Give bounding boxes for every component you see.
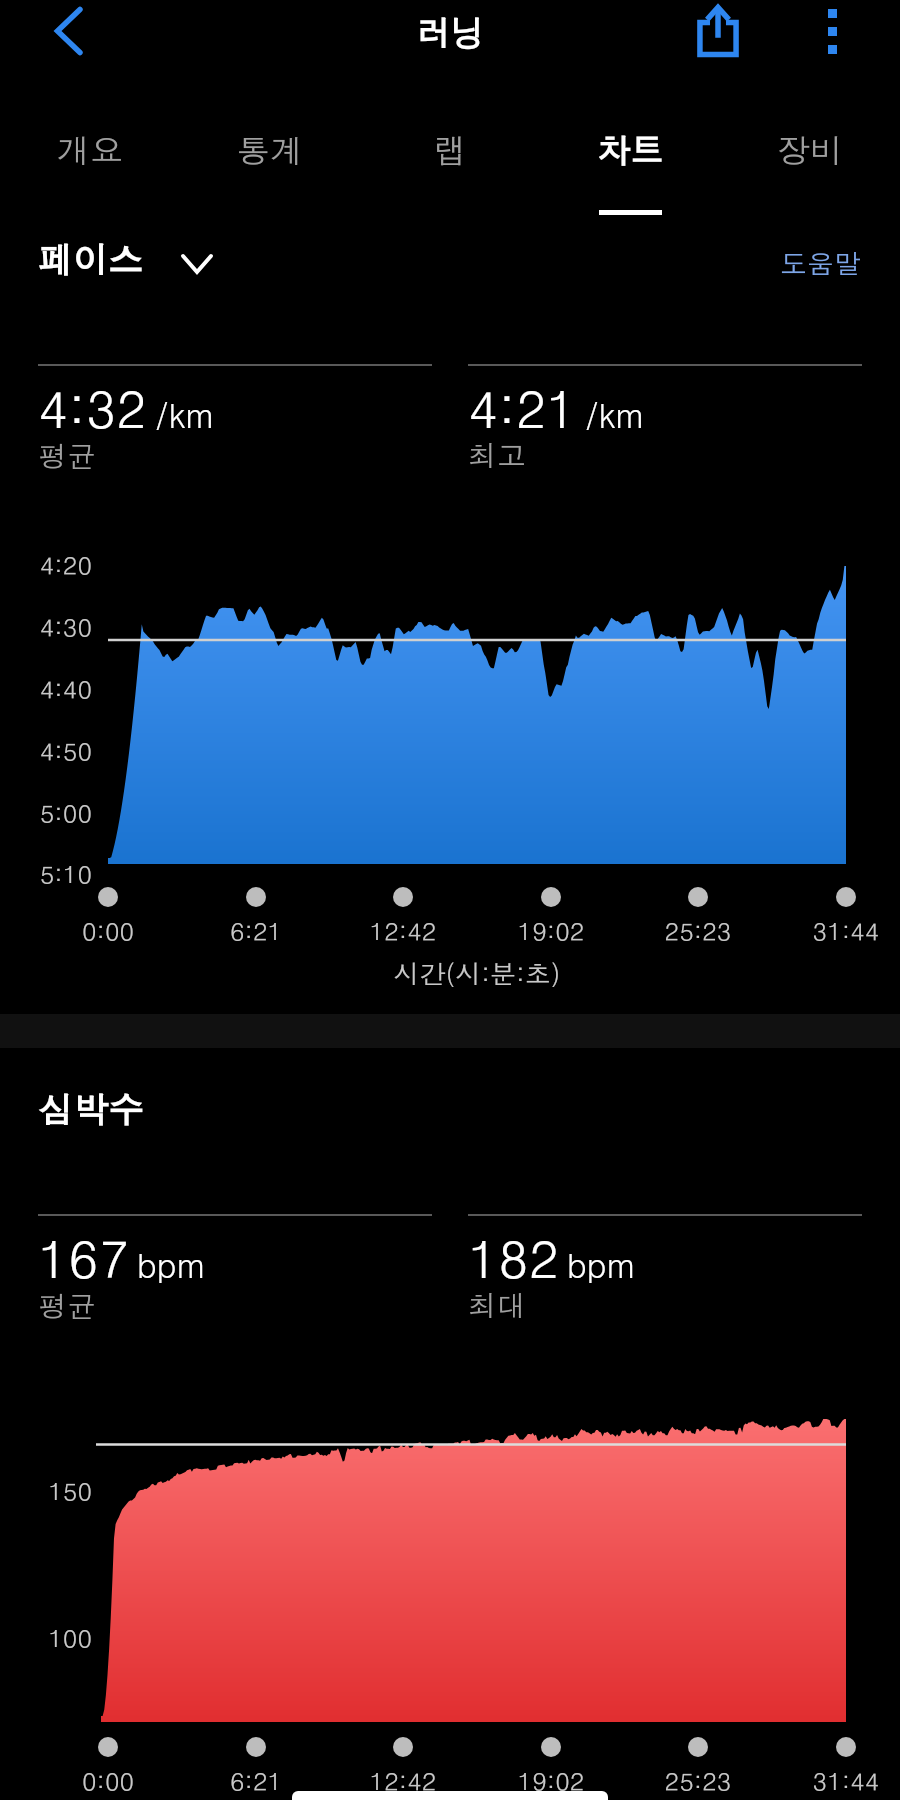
staticText: 31:44 [786, 1763, 900, 1798]
button[interactable]: Back [36, 0, 100, 62]
staticText: 4:40 [0, 671, 92, 706]
staticText: bpm [567, 1241, 637, 1288]
staticText: 167 [38, 1220, 129, 1294]
staticText: 5:10 [0, 856, 92, 891]
staticText: /km [155, 391, 216, 438]
staticText: 4:30 [0, 609, 92, 644]
staticText: 12:42 [343, 913, 463, 948]
staticText: 6:21 [196, 1763, 316, 1798]
staticText: 5:00 [0, 795, 92, 830]
staticText: 0:00 [48, 913, 168, 948]
staticText: 4:21 [468, 370, 577, 444]
staticText: 6:21 [196, 913, 316, 948]
staticText: 심박수 [38, 1083, 143, 1132]
button[interactable]: Share [686, 0, 750, 62]
staticText: 150 [0, 1473, 92, 1508]
staticText: 0:00 [48, 1763, 168, 1798]
staticText: 평균 [38, 434, 96, 475]
button[interactable]: 개요 [0, 0, 180, 215]
staticText: 4:32 [38, 370, 147, 444]
button[interactable]: 장비 [720, 0, 900, 215]
staticText: 랩 [434, 126, 467, 173]
staticText: 4:20 [0, 547, 92, 582]
staticText: 러닝 [416, 7, 484, 55]
staticText: 개요 [57, 126, 123, 173]
button[interactable]: 도움말 [780, 243, 861, 281]
staticText: 최대 [468, 1284, 526, 1325]
staticText: 19:02 [491, 913, 611, 948]
button[interactable]: More options [800, 0, 864, 62]
staticText: 장비 [777, 126, 843, 173]
staticText: 평균 [38, 1284, 96, 1325]
staticText: 12:42 [343, 1763, 463, 1798]
staticText: 시간(시:분:초) [277, 955, 677, 992]
button[interactable]: 페이스 [38, 233, 213, 282]
staticText: 100 [0, 1620, 92, 1655]
staticText: 통계 [237, 126, 303, 173]
staticText: 차트 [597, 126, 663, 173]
button[interactable]: 차트 [540, 0, 720, 215]
staticText: 25:23 [638, 913, 758, 948]
button[interactable]: 랩 [360, 0, 540, 215]
staticText: bpm [137, 1241, 207, 1288]
button[interactable]: 통계 [180, 0, 360, 215]
staticText: 25:23 [638, 1763, 758, 1798]
staticText: /km [585, 391, 646, 438]
staticText: 최고 [468, 434, 526, 475]
staticText: 182 [468, 1220, 559, 1294]
staticText: 31:44 [786, 913, 900, 948]
staticText: 19:02 [491, 1763, 611, 1798]
staticText: 4:50 [0, 733, 92, 768]
staticText: 페이스 [38, 233, 143, 282]
